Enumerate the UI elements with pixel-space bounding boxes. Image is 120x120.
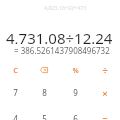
staticText: −	[102, 112, 108, 120]
staticText: 5	[42, 113, 47, 120]
staticText: 4,731.08÷12.24	[6, 28, 113, 44]
staticText: = 386.5261437908496732	[14, 45, 110, 55]
staticText: C	[13, 65, 18, 75]
staticText: 4,823.16÷92+473	[44, 4, 87, 11]
button[interactable]: %	[60, 59, 90, 81]
button[interactable]: Backspace	[29, 59, 59, 81]
button[interactable]: 7	[0, 81, 30, 103]
button[interactable]: 4	[0, 107, 30, 120]
button[interactable]: 5	[29, 107, 59, 120]
button[interactable]: 8	[29, 81, 59, 103]
button[interactable]: ÷	[90, 60, 120, 82]
staticText: ×	[102, 87, 108, 100]
staticText: %	[72, 65, 79, 75]
button[interactable]: 9	[60, 81, 90, 103]
button[interactable]: ×	[90, 82, 120, 104]
staticText: 7	[13, 87, 18, 98]
staticText: 8	[42, 87, 47, 98]
staticText: 9	[73, 87, 78, 98]
staticText: ÷	[102, 64, 108, 78]
button[interactable]: 6	[60, 107, 90, 120]
button[interactable]: C	[0, 59, 30, 81]
staticText: 6	[73, 113, 78, 120]
button[interactable]: −	[90, 107, 120, 120]
staticText: 4	[13, 113, 18, 120]
